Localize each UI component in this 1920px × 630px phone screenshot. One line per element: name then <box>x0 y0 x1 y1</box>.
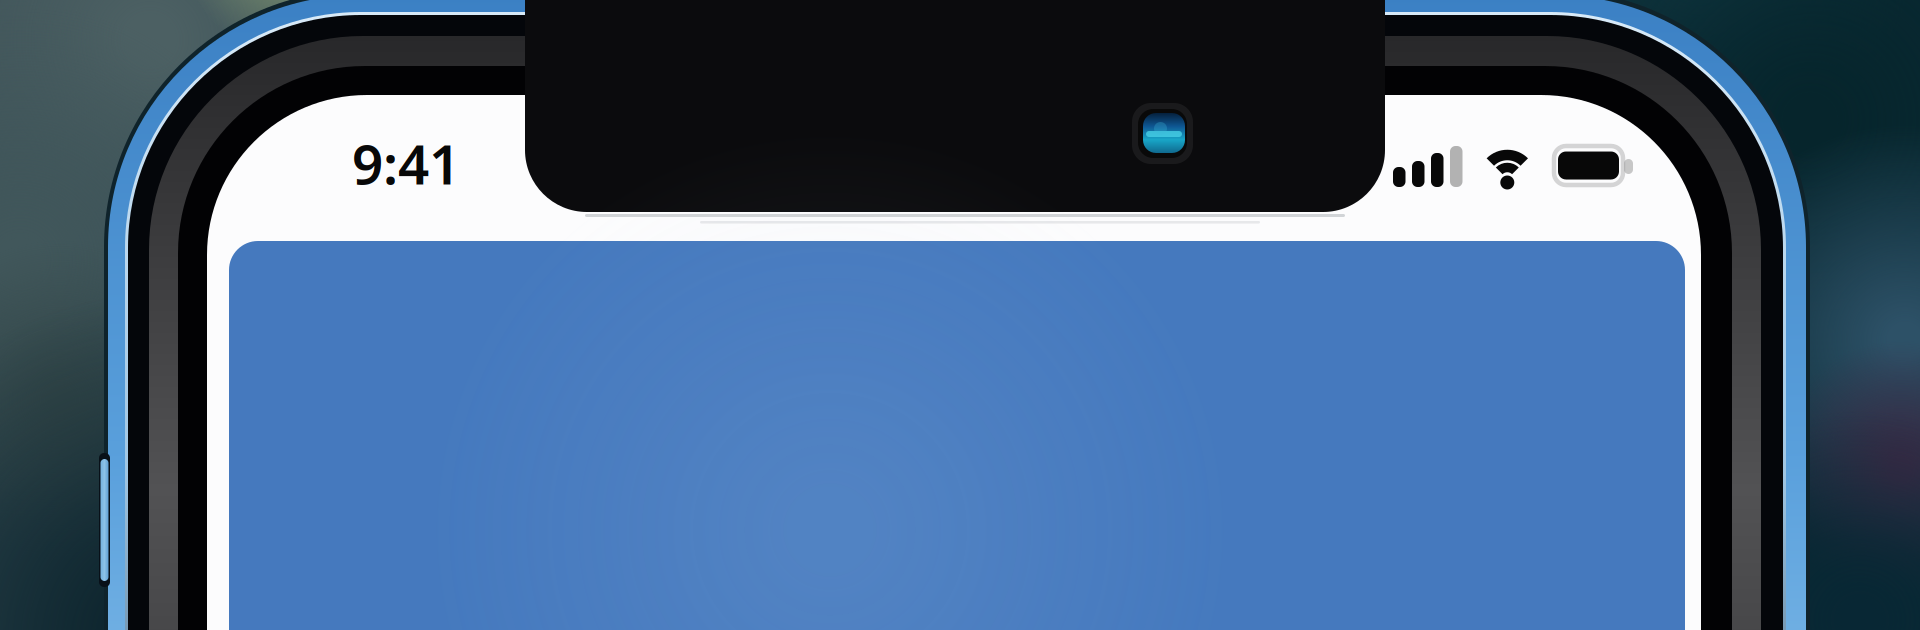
staticText: 9:41 <box>352 127 460 200</box>
button[interactable]: App content <box>229 241 1685 630</box>
button[interactable]: Volume down <box>99 453 110 587</box>
